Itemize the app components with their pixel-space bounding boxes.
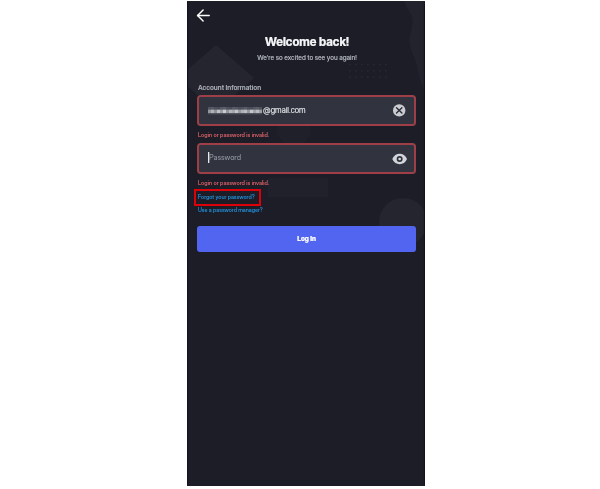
button[interactable]: Password <box>197 143 416 174</box>
button[interactable]: @gmail.com <box>197 95 416 126</box>
button[interactable]: Log In <box>197 226 416 252</box>
button[interactable]: Show password <box>392 148 408 169</box>
button[interactable]: Back <box>191 4 215 28</box>
staticText: Password <box>209 153 242 162</box>
button[interactable]: Use a password manager? <box>198 207 263 214</box>
button[interactable]: Clear text <box>393 100 406 121</box>
staticText: We're so excited to see you again! <box>188 54 425 62</box>
staticText: Login or password is invalid. <box>198 179 270 186</box>
staticText: Welcome back! <box>188 34 425 48</box>
staticText: @gmail.com <box>263 105 306 114</box>
staticText: Log In <box>197 235 416 243</box>
staticText: Login or password is invalid. <box>198 131 270 138</box>
staticText: Account Information <box>198 83 262 91</box>
button[interactable]: Forgot your password? <box>198 194 255 201</box>
